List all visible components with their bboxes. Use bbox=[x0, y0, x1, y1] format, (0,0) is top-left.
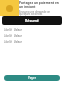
staticText: Libellé bbox=[4, 40, 12, 44]
staticText: Libellé bbox=[4, 28, 12, 32]
button[interactable]: Libellé bbox=[4, 39, 60, 45]
button[interactable]: Payer bbox=[4, 75, 60, 81]
staticText: Résumé bbox=[25, 18, 39, 23]
staticText: Envoyez une demande en quelques secondes bbox=[19, 10, 62, 16]
staticText: Valeur bbox=[14, 34, 22, 38]
staticText: Valeur bbox=[14, 28, 22, 32]
button[interactable]: Libellé bbox=[4, 33, 60, 39]
staticText: Libellé bbox=[4, 34, 12, 38]
button[interactable]: Libellé bbox=[4, 27, 60, 33]
staticText: Valeur bbox=[14, 40, 22, 44]
staticText: Payer bbox=[28, 76, 36, 80]
staticText: Partagez un paiement en un instant bbox=[19, 1, 62, 9]
